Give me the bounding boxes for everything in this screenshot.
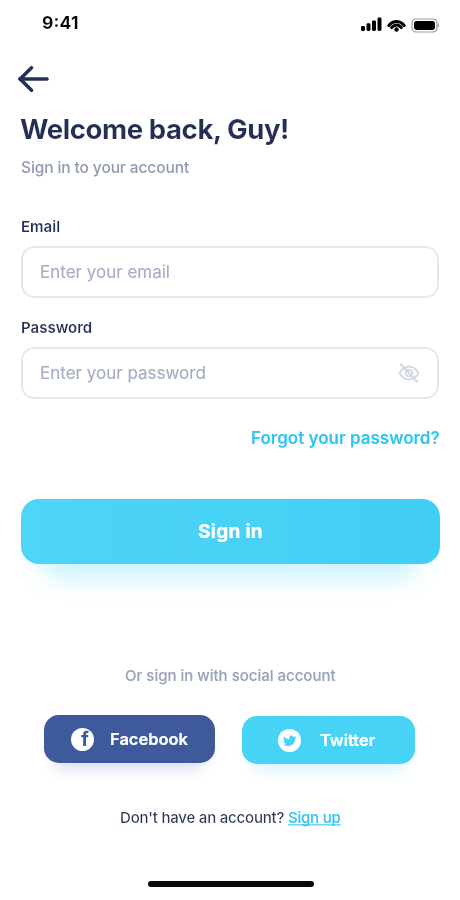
staticText: Email <box>21 217 61 235</box>
button[interactable]: f <box>44 715 215 763</box>
button[interactable]: Enter your email <box>21 246 439 298</box>
button[interactable] <box>12 58 54 100</box>
button[interactable]: Twitter <box>242 716 415 764</box>
button[interactable]: Don't have an account? Sign up <box>120 808 341 826</box>
staticText: Enter your password <box>40 363 206 384</box>
staticText: f <box>81 728 89 750</box>
button[interactable]: Forgot your password? <box>251 428 440 449</box>
staticText: Or sign in with social account <box>125 666 336 684</box>
staticText: Facebook <box>110 729 189 749</box>
staticText: 9:41 <box>42 12 79 33</box>
staticText: Enter your email <box>40 262 170 283</box>
staticText: Password <box>21 318 93 336</box>
button[interactable]: Enter your password <box>21 347 439 399</box>
staticText: Welcome back, Guy! <box>20 112 289 145</box>
staticText: Sign in to your account <box>21 158 190 177</box>
staticText: Twitter <box>320 730 376 750</box>
button[interactable]: Sign in <box>21 499 440 564</box>
staticText: Sign in <box>198 520 264 543</box>
